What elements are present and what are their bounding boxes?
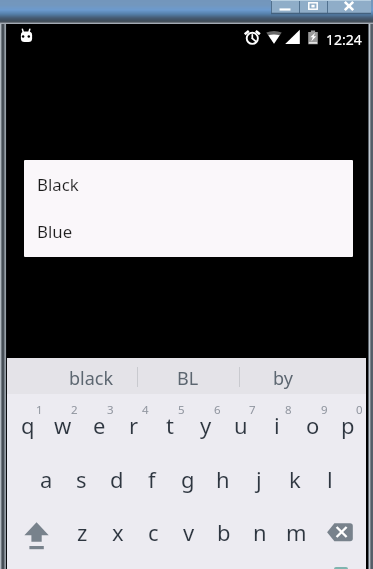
button[interactable]: h bbox=[205, 454, 241, 507]
staticText: g bbox=[181, 464, 195, 494]
staticText: s bbox=[76, 464, 87, 494]
button[interactable]: Backspace bbox=[313, 507, 367, 560]
button[interactable]: l bbox=[312, 454, 348, 507]
button[interactable]: Shift bbox=[10, 507, 64, 560]
staticText: m bbox=[286, 517, 307, 547]
staticText: by bbox=[273, 366, 293, 391]
button[interactable]: v bbox=[171, 507, 207, 560]
button[interactable]: b bbox=[206, 507, 242, 560]
button[interactable]: g bbox=[170, 454, 206, 507]
button[interactable]: r bbox=[116, 400, 152, 453]
staticText: 3 bbox=[107, 402, 114, 418]
button[interactable]: p bbox=[330, 400, 366, 453]
button[interactable]: Black bbox=[24, 164, 353, 205]
staticText: Black bbox=[37, 173, 79, 196]
staticText: x bbox=[112, 517, 124, 547]
staticText: 8 bbox=[285, 402, 292, 418]
staticText: y bbox=[200, 410, 212, 440]
staticText: 2 bbox=[71, 402, 78, 418]
staticText: 1 bbox=[36, 402, 43, 418]
staticText: z bbox=[77, 517, 88, 547]
button[interactable]: z bbox=[64, 507, 100, 560]
button[interactable]: y bbox=[188, 400, 224, 453]
staticText: i bbox=[274, 410, 280, 440]
button[interactable]: q bbox=[10, 400, 46, 453]
staticText: p bbox=[341, 410, 355, 440]
staticText: 4 bbox=[142, 402, 149, 418]
staticText: e bbox=[93, 410, 106, 440]
staticText: r bbox=[129, 410, 139, 440]
button[interactable]: k bbox=[277, 454, 313, 507]
button[interactable]: c bbox=[135, 507, 171, 560]
button[interactable]: m bbox=[278, 507, 314, 560]
button[interactable]: Blue bbox=[24, 211, 353, 252]
staticText: k bbox=[289, 464, 301, 494]
button[interactable]: d bbox=[99, 454, 135, 507]
button[interactable]: a bbox=[28, 454, 64, 507]
button[interactable]: t bbox=[152, 400, 188, 453]
staticText: j bbox=[256, 464, 262, 494]
staticText: l bbox=[327, 464, 333, 494]
button[interactable]: e bbox=[81, 400, 117, 453]
button[interactable]: n bbox=[242, 507, 278, 560]
button[interactable]: Close bbox=[327, 0, 371, 14]
button[interactable]: w bbox=[45, 400, 81, 453]
button[interactable]: Enter bbox=[334, 567, 348, 569]
staticText: q bbox=[21, 410, 35, 440]
button[interactable]: u bbox=[223, 400, 259, 453]
staticText: b bbox=[217, 517, 231, 547]
button[interactable]: by bbox=[235, 358, 331, 394]
button[interactable]: x bbox=[100, 507, 136, 560]
staticText: Blue bbox=[37, 220, 73, 243]
button[interactable]: Minimize bbox=[271, 0, 299, 14]
staticText: n bbox=[253, 517, 267, 547]
staticText: u bbox=[234, 410, 248, 440]
staticText: 5 bbox=[178, 402, 185, 418]
staticText: d bbox=[110, 464, 124, 494]
button[interactable]: f bbox=[134, 454, 170, 507]
staticText: c bbox=[148, 517, 159, 547]
staticText: black bbox=[69, 366, 114, 391]
staticText: t bbox=[166, 410, 174, 440]
button[interactable]: Maximize bbox=[299, 0, 327, 14]
button[interactable]: o bbox=[295, 400, 331, 453]
staticText: f bbox=[148, 464, 156, 494]
staticText: 9 bbox=[321, 402, 328, 418]
staticText: v bbox=[183, 517, 195, 547]
button[interactable]: i bbox=[259, 400, 295, 453]
button[interactable]: j bbox=[241, 454, 277, 507]
staticText: 7 bbox=[249, 402, 256, 418]
button[interactable]: black bbox=[43, 358, 139, 394]
staticText: BL bbox=[177, 366, 199, 391]
button[interactable]: BL bbox=[140, 358, 236, 394]
staticText: o bbox=[306, 410, 320, 440]
button[interactable]: s bbox=[63, 454, 99, 507]
staticText: a bbox=[40, 464, 53, 494]
staticText: w bbox=[54, 410, 72, 440]
staticText: 12:24 bbox=[326, 30, 362, 49]
staticText: 6 bbox=[214, 402, 221, 418]
staticText: h bbox=[216, 464, 230, 494]
staticText: 0 bbox=[356, 402, 363, 418]
